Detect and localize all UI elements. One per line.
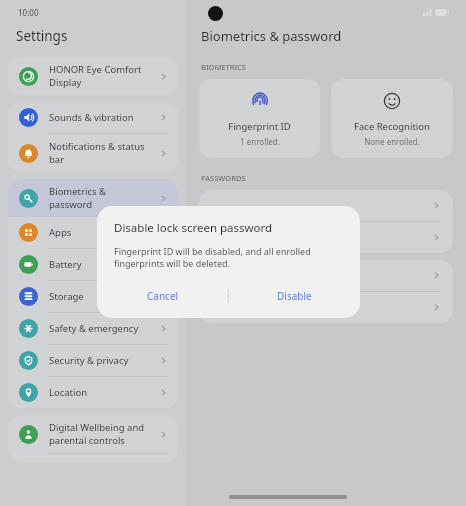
button[interactable]: Storage <box>8 281 178 312</box>
staticText: Safety & emergency <box>49 322 159 335</box>
staticText: Sounds & vibration <box>49 111 159 124</box>
staticText: Biometrics & password <box>201 27 342 45</box>
button[interactable]: Cancel <box>97 281 228 311</box>
button[interactable]: HONOR Eye Comfort Display <box>8 57 178 95</box>
staticText: None enrolled. <box>364 136 420 147</box>
staticText: Cancel <box>147 289 179 303</box>
staticText: Extend Unlock <box>211 301 432 314</box>
button[interactable]: Smart unlock <box>199 222 453 253</box>
staticText: BIOMETRICS <box>201 62 246 72</box>
staticText: Apps <box>49 226 159 239</box>
staticText <box>211 231 432 244</box>
button[interactable]: Battery <box>8 249 178 280</box>
staticText <box>211 199 432 212</box>
staticText: Biometrics & password <box>49 185 159 211</box>
button[interactable]: Disable <box>229 281 360 311</box>
button[interactable]: Biometrics & password <box>8 179 178 217</box>
button[interactable]: Digital Wellbeing and parental controls <box>8 415 178 453</box>
button[interactable]: Location <box>8 377 178 408</box>
staticText: Notifications & status bar <box>49 140 159 166</box>
staticText: Disable lock screen password <box>114 220 273 236</box>
button[interactable]: Face Recognition <box>331 79 453 158</box>
staticText: Fingerprint ID will be disabled, and all… <box>114 245 311 269</box>
button[interactable]: Lock screen password <box>199 190 453 221</box>
staticText: Storage <box>49 290 159 303</box>
button[interactable]: Apps <box>8 217 178 248</box>
staticText: Disable <box>277 289 312 303</box>
staticText: Digital Wellbeing and parental controls <box>49 421 159 447</box>
staticText: PASSWORDS <box>201 173 246 183</box>
staticText: Security & privacy <box>49 354 159 367</box>
staticText <box>211 269 432 282</box>
staticText: Face Recognition <box>354 120 430 133</box>
button[interactable]: Sounds & vibration <box>8 102 178 133</box>
staticText: Fingerprint ID <box>228 120 291 133</box>
button[interactable]: Security & privacy <box>8 345 178 376</box>
button[interactable]: Extend Unlock <box>199 292 453 323</box>
button[interactable]: Fingerprint ID <box>199 79 320 158</box>
button[interactable]: Notifications & status bar <box>8 134 178 172</box>
staticText: Battery <box>49 258 159 271</box>
staticText: Settings <box>16 27 68 45</box>
button[interactable]: App lock <box>199 260 453 291</box>
staticText: HONOR Eye Comfort Display <box>49 63 159 89</box>
button[interactable]: Safety & emergency <box>8 313 178 344</box>
staticText: Location <box>49 386 159 399</box>
staticText: 1 enrolled. <box>240 136 280 147</box>
staticText: 10:00 <box>18 7 39 18</box>
